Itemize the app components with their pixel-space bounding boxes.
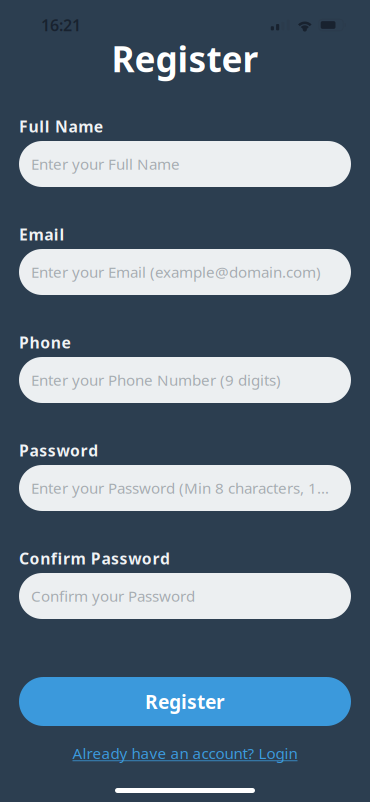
button[interactable]: Confirm your Password	[19, 573, 351, 619]
button[interactable]: Enter your Email (example@domain.com)	[19, 249, 351, 295]
button[interactable]: Already have an account? Login	[72, 744, 297, 762]
staticText: Register	[111, 34, 258, 82]
staticText: 16:21	[41, 14, 81, 36]
button[interactable]: Register	[19, 677, 351, 726]
staticText: Password	[19, 440, 98, 461]
staticText: Email	[19, 224, 64, 245]
staticText: Register	[145, 688, 225, 715]
staticText: Phone	[19, 332, 70, 353]
button[interactable]: Enter your Password (Min 8 characters, 1…	[19, 465, 351, 511]
button[interactable]: Enter your Phone Number (9 digits)	[19, 357, 351, 403]
staticText: Enter your Phone Number (9 digits)	[31, 370, 281, 390]
staticText: Enter your Password (Min 8 characters, 1…	[31, 478, 329, 498]
staticText: Confirm your Password	[31, 586, 195, 606]
staticText: Full Name	[19, 116, 103, 137]
staticText: Already have an account? Login	[72, 743, 297, 763]
staticText: Confirm Password	[19, 548, 170, 569]
button[interactable]: Enter your Full Name	[19, 141, 351, 187]
staticText: Enter your Full Name	[31, 154, 180, 174]
staticText: Enter your Email (example@domain.com)	[31, 262, 321, 282]
